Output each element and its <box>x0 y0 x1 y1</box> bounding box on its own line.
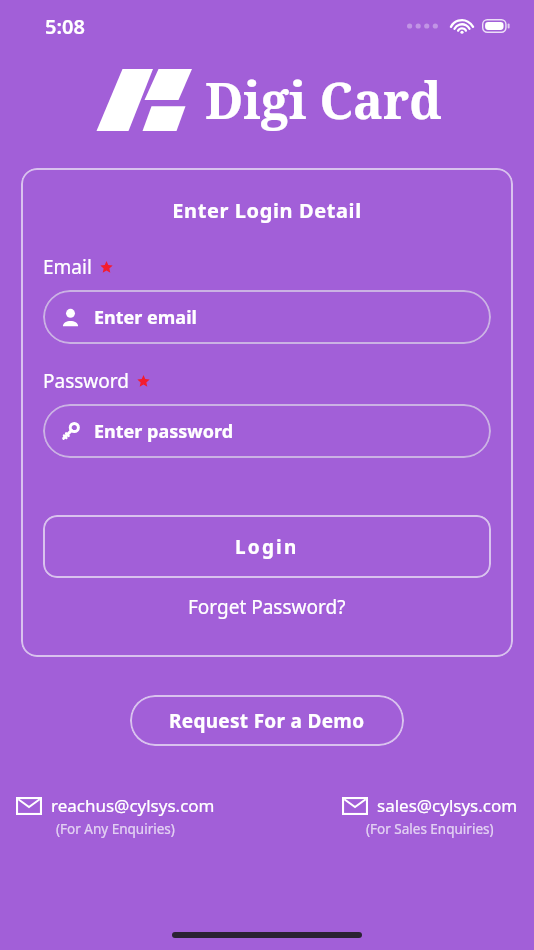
staticText: Request For a Demo <box>169 708 365 734</box>
staticText: Email <box>43 254 92 280</box>
staticText: sales@cylsys.com <box>377 794 518 817</box>
button[interactable]: sales@cylsys.com <box>342 794 518 838</box>
button[interactable]: reachus@cylsys.com <box>16 794 215 838</box>
staticText: Enter password <box>94 419 234 444</box>
button[interactable]: Request For a Demo <box>130 695 404 746</box>
button[interactable]: Login <box>43 515 491 578</box>
button[interactable]: Forget Password? <box>43 594 491 620</box>
staticText: Forget Password? <box>188 594 346 620</box>
staticText: Enter Login Detail <box>43 197 491 224</box>
staticText: Password <box>43 368 129 394</box>
staticText: Digi Card <box>205 66 442 134</box>
staticText: Login <box>235 534 299 560</box>
staticText: Enter email <box>94 305 197 330</box>
staticText: reachus@cylsys.com <box>51 794 215 817</box>
staticText: (For Sales Enquiries) <box>366 820 494 838</box>
button[interactable]: Enter password <box>43 404 491 458</box>
staticText: 5:08 <box>45 13 85 40</box>
button[interactable]: Enter email <box>43 290 491 344</box>
staticText: (For Any Enquiries) <box>56 820 175 838</box>
